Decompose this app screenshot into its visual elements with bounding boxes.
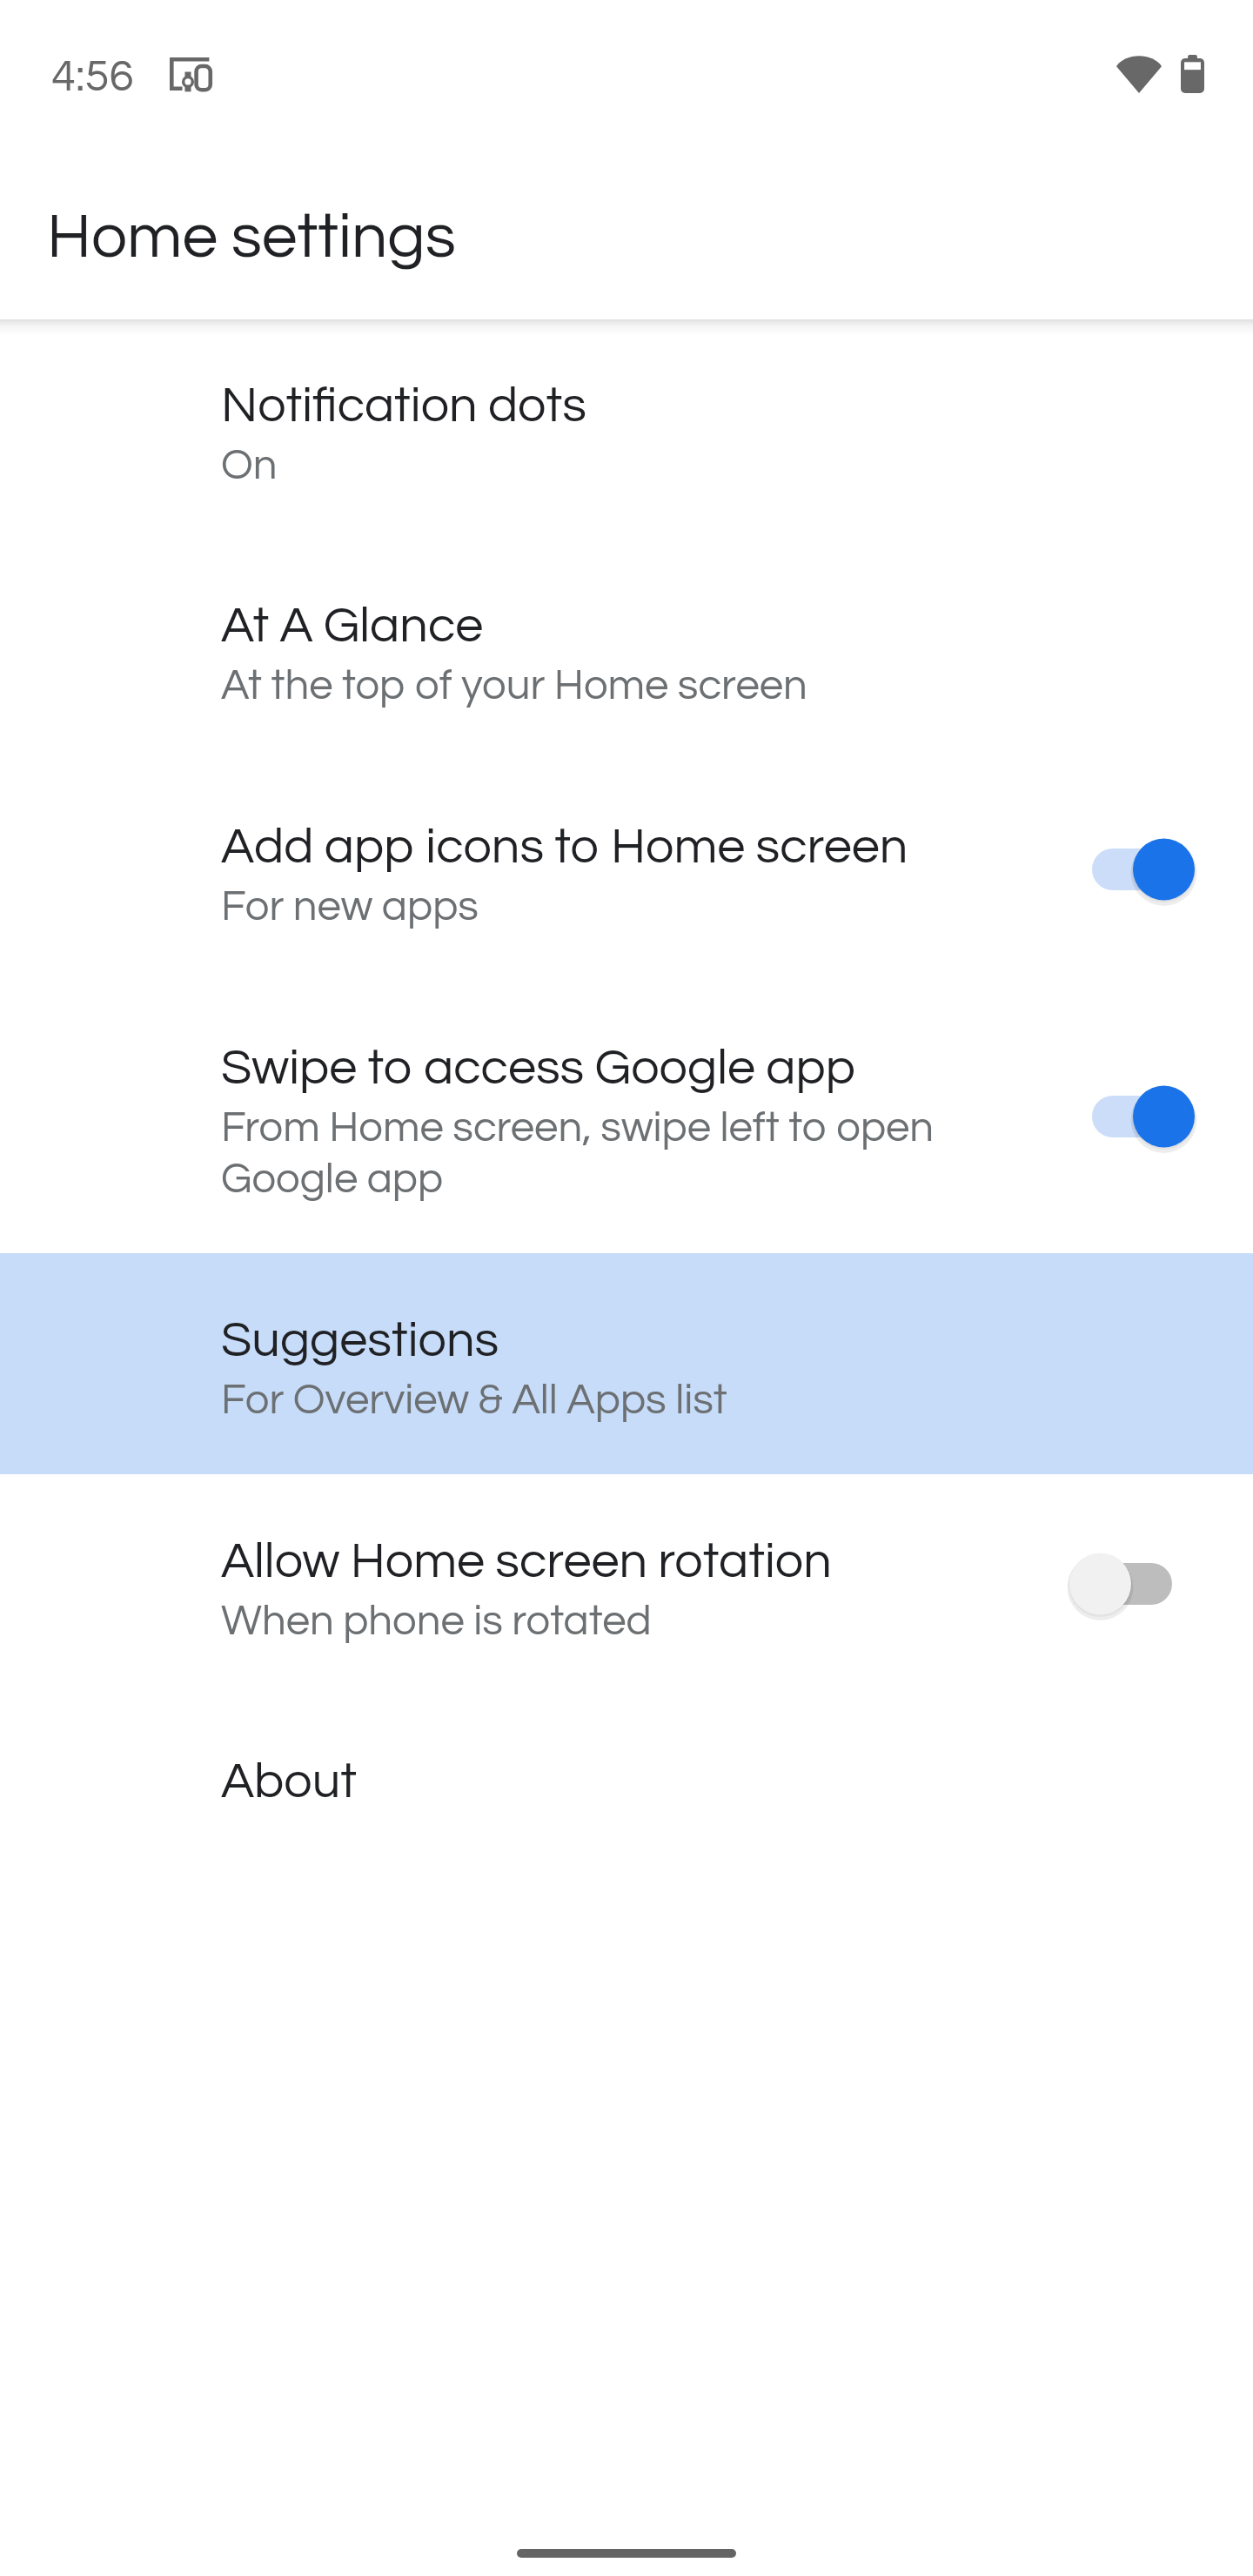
staticText: At the top of your Home screen (221, 658, 807, 709)
staticText: 4:56 (51, 49, 134, 101)
staticText: About (221, 1751, 357, 1809)
button[interactable]: Switch on (1069, 1077, 1195, 1156)
staticText: From Home screen, swipe left to open Goo… (221, 1100, 935, 1203)
button[interactable]: Allow Home screen rotation (0, 1474, 1253, 1694)
staticText: On (221, 438, 278, 489)
staticText: Notification dots (221, 375, 586, 433)
button[interactable]: Add app icons to Home screen (0, 760, 1253, 980)
other: Connected devices (169, 57, 211, 91)
button[interactable]: Notification dots (0, 319, 1253, 540)
button[interactable]: At A Glance (0, 540, 1253, 760)
other: Battery (1181, 55, 1204, 93)
button[interactable]: Switch on (1069, 830, 1195, 909)
staticText: When phone is rotated (221, 1593, 652, 1645)
staticText: For Overview & All Apps list (221, 1372, 727, 1424)
staticText: Allow Home screen rotation (221, 1531, 832, 1589)
staticText: Suggestions (221, 1310, 499, 1368)
button[interactable]: About (0, 1694, 1253, 1915)
staticText: Swipe to access Google app (221, 1037, 855, 1096)
staticText: Add app icons to Home screen (221, 816, 908, 875)
button[interactable]: Swipe to access Google app (0, 980, 1253, 1253)
other: Wi-Fi (1116, 55, 1162, 93)
button[interactable]: Switch off (1069, 1545, 1195, 1623)
staticText: At A Glance (221, 595, 484, 654)
staticText: For new apps (221, 879, 479, 930)
button[interactable]: Suggestions (0, 1253, 1253, 1474)
staticText: Home settings (47, 198, 456, 272)
